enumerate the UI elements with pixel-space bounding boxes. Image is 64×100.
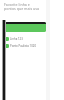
button[interactable]	[5, 22, 46, 32]
staticText: Favorite linha e pontos que mais usa	[4, 2, 40, 11]
button[interactable]: Ponto Paulista 1020	[5, 44, 41, 48]
button[interactable]: Linha 123	[5, 37, 41, 41]
staticText: Ponto Paulista 1020	[10, 44, 37, 48]
staticText: Linha 123	[10, 37, 23, 41]
